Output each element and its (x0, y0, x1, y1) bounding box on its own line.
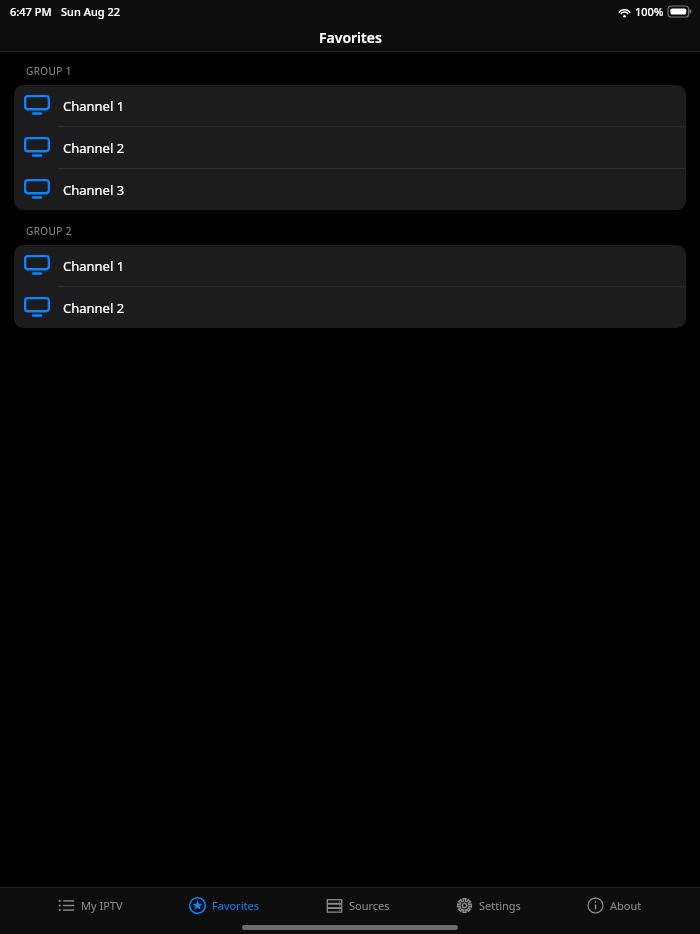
button[interactable]: My IPTV (50, 893, 131, 918)
button[interactable]: Channel 1 (14, 245, 686, 286)
staticText: Favorites (212, 898, 259, 913)
staticText: About (610, 898, 642, 913)
button[interactable]: Favorites (181, 893, 267, 918)
button[interactable]: Channel 2 (14, 127, 686, 168)
staticText: 100% (635, 4, 664, 19)
staticText: Favorites (319, 28, 382, 47)
button[interactable]: Sources (318, 893, 398, 918)
staticText: Settings (479, 898, 521, 913)
button[interactable]: Settings (448, 893, 529, 918)
staticText: Channel 2 (63, 299, 125, 317)
button[interactable]: Channel 1 (14, 85, 686, 126)
staticText: GROUP 2 (26, 224, 72, 238)
staticText: 6:47 PM (10, 4, 52, 19)
staticText: Channel 2 (63, 139, 125, 157)
staticText: My IPTV (81, 898, 123, 913)
staticText: GROUP 1 (26, 64, 72, 78)
button[interactable]: Channel 3 (14, 169, 686, 210)
staticText: Channel 1 (63, 257, 125, 275)
button[interactable]: Channel 2 (14, 287, 686, 328)
staticText: Channel 1 (63, 97, 125, 115)
staticText: Sources (349, 898, 390, 913)
button[interactable]: About (579, 893, 650, 918)
staticText: Channel 3 (63, 181, 125, 199)
staticText: Sun Aug 22 (61, 4, 121, 19)
